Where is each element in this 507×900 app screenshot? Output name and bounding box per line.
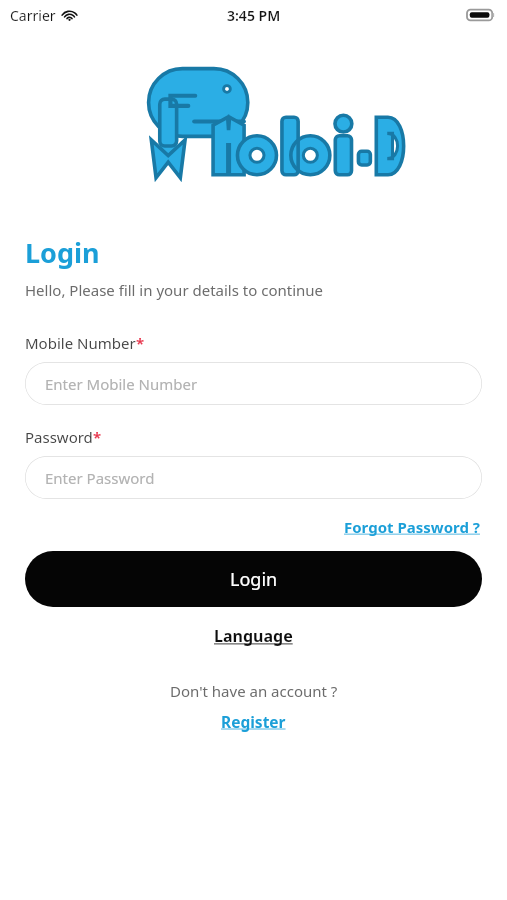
other: Mobi-D logo	[130, 62, 378, 182]
staticText: Password	[25, 427, 93, 447]
staticText: *	[93, 427, 102, 447]
staticText: *	[136, 333, 145, 353]
staticText: Hello, Please fill in your details to co…	[25, 280, 324, 300]
button[interactable]: Enter Mobile Number	[25, 362, 482, 405]
staticText: Enter Mobile Number	[45, 374, 198, 394]
staticText: Login	[25, 234, 100, 271]
staticText: Forgot Password ?	[344, 517, 480, 537]
button[interactable]: Login	[25, 551, 482, 607]
staticText: Language	[214, 625, 293, 647]
staticText: 3:45 PM	[227, 6, 281, 25]
button[interactable]: Register	[218, 708, 289, 735]
button[interactable]: Forgot Password ?	[342, 515, 482, 539]
staticText: Enter Password	[45, 468, 155, 488]
button[interactable]: Language	[210, 621, 297, 651]
staticText: Don't have an account ?	[170, 681, 338, 701]
staticText: Carrier	[10, 6, 56, 25]
staticText: Login	[230, 567, 278, 592]
staticText: Mobile Number	[25, 333, 136, 353]
button[interactable]: Enter Password	[25, 456, 482, 499]
staticText: Register	[221, 711, 286, 732]
